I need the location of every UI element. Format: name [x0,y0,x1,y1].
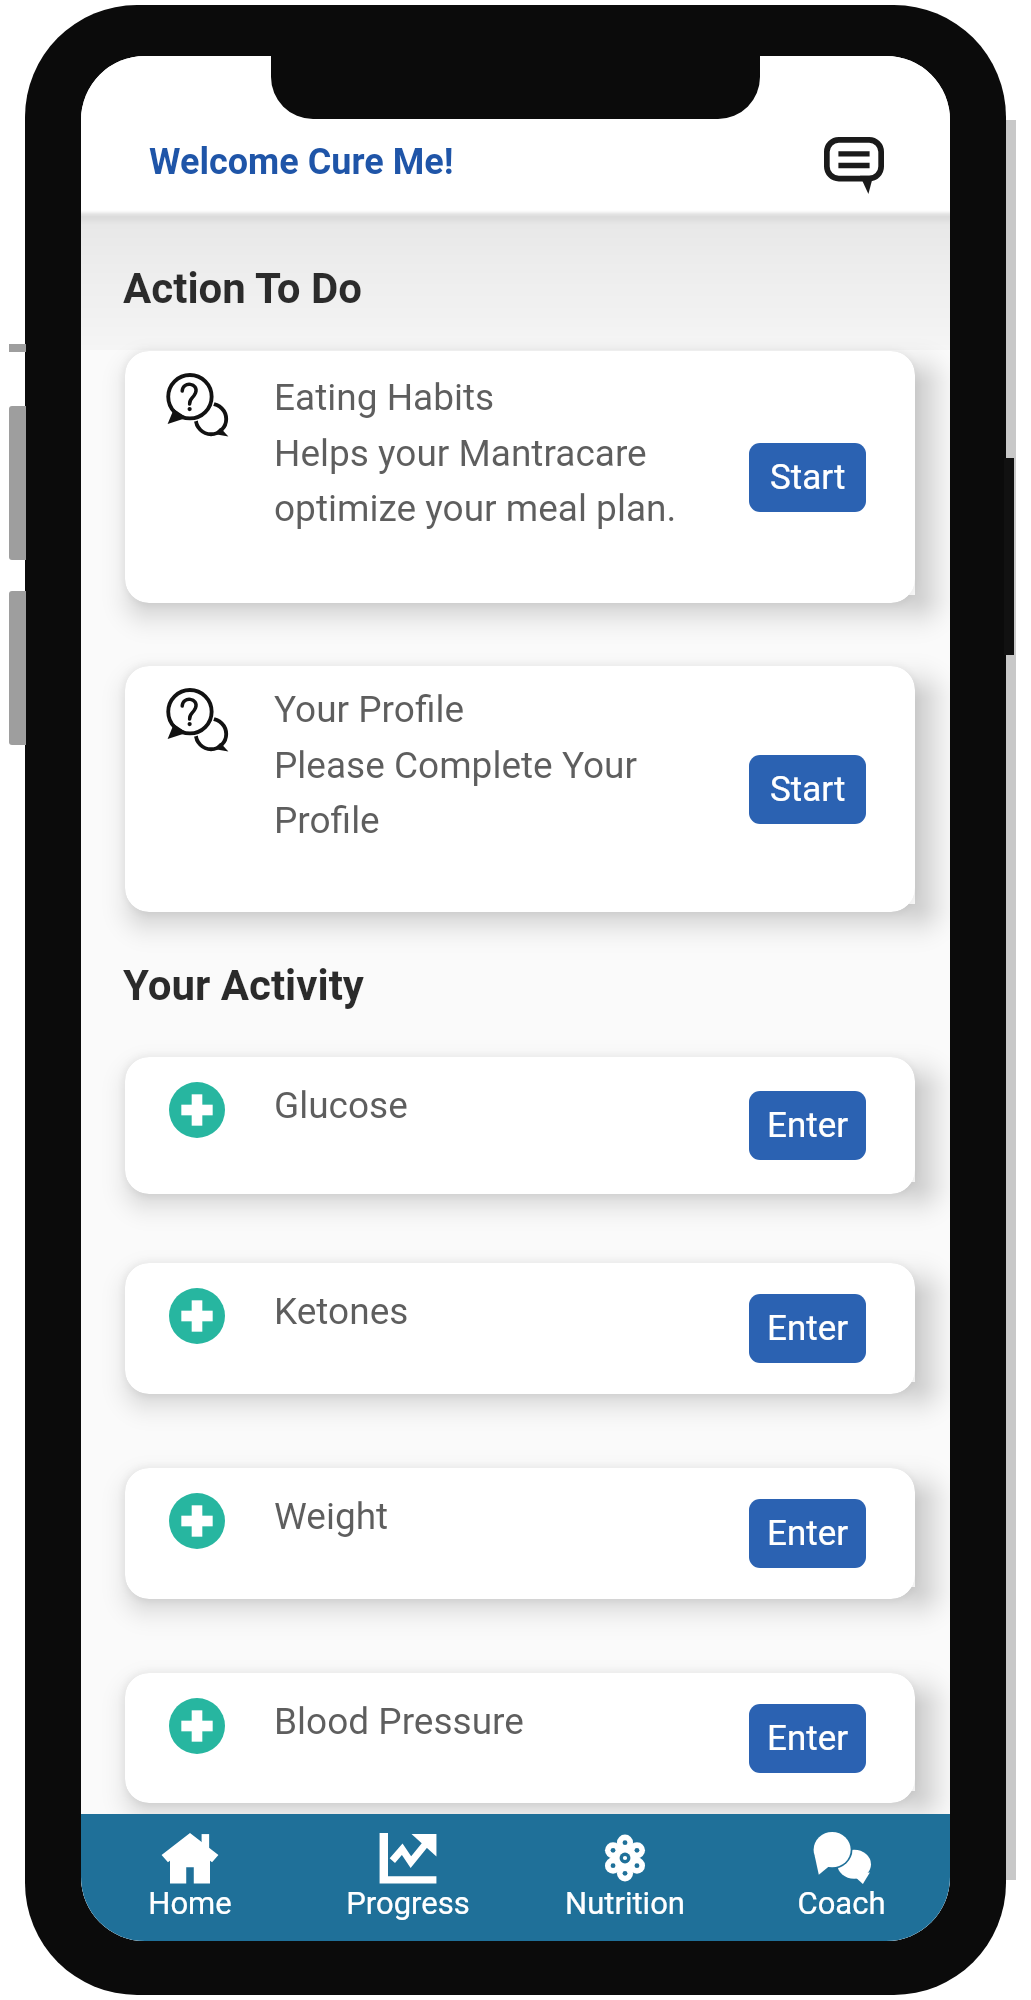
staticText: Action To Do [123,264,363,313]
staticText: Start [770,457,846,498]
button[interactable]: Start [749,755,866,824]
staticText: Welcome Cure Me! [149,141,454,183]
button[interactable]: Your Profile Please Complete Your Profil… [125,666,915,912]
button[interactable]: Weight [125,1468,915,1599]
staticText: Blood Pressure [274,1700,524,1743]
button[interactable]: Start [749,443,866,512]
button[interactable]: Glucose [125,1057,915,1194]
staticText: Glucose [274,1084,408,1127]
button[interactable]: Coach [733,1814,950,1941]
staticText: Ketones [274,1290,409,1333]
button[interactable]: Enter [749,1091,866,1160]
button[interactable]: Blood Pressure [125,1673,915,1803]
staticText: Your Profile Please Complete Your Profil… [274,688,637,842]
staticText: Home [148,1885,232,1921]
staticText: Progress [346,1885,470,1921]
staticText: Enter [767,1718,849,1759]
button[interactable]: Enter [749,1499,866,1568]
staticText: Nutrition [565,1885,685,1921]
button[interactable]: Progress [299,1814,516,1941]
staticText: Start [770,769,846,810]
staticText: Coach [797,1885,886,1921]
button[interactable]: Enter [749,1294,866,1363]
button[interactable]: Enter [749,1704,866,1773]
button[interactable]: Eating Habits Helps your Mantracare opti… [125,351,915,603]
button[interactable]: Nutrition [516,1814,733,1941]
staticText: Your Activity [123,961,364,1010]
button[interactable]: Ketones [125,1263,915,1394]
staticText: Enter [767,1513,849,1554]
staticText: Eating Habits Helps your Mantracare opti… [274,376,677,530]
button[interactable]: Home [81,1814,299,1941]
staticText: Enter [767,1308,849,1349]
button[interactable]: Messages [814,125,894,205]
staticText: Enter [767,1105,849,1146]
staticText: Weight [274,1495,389,1538]
